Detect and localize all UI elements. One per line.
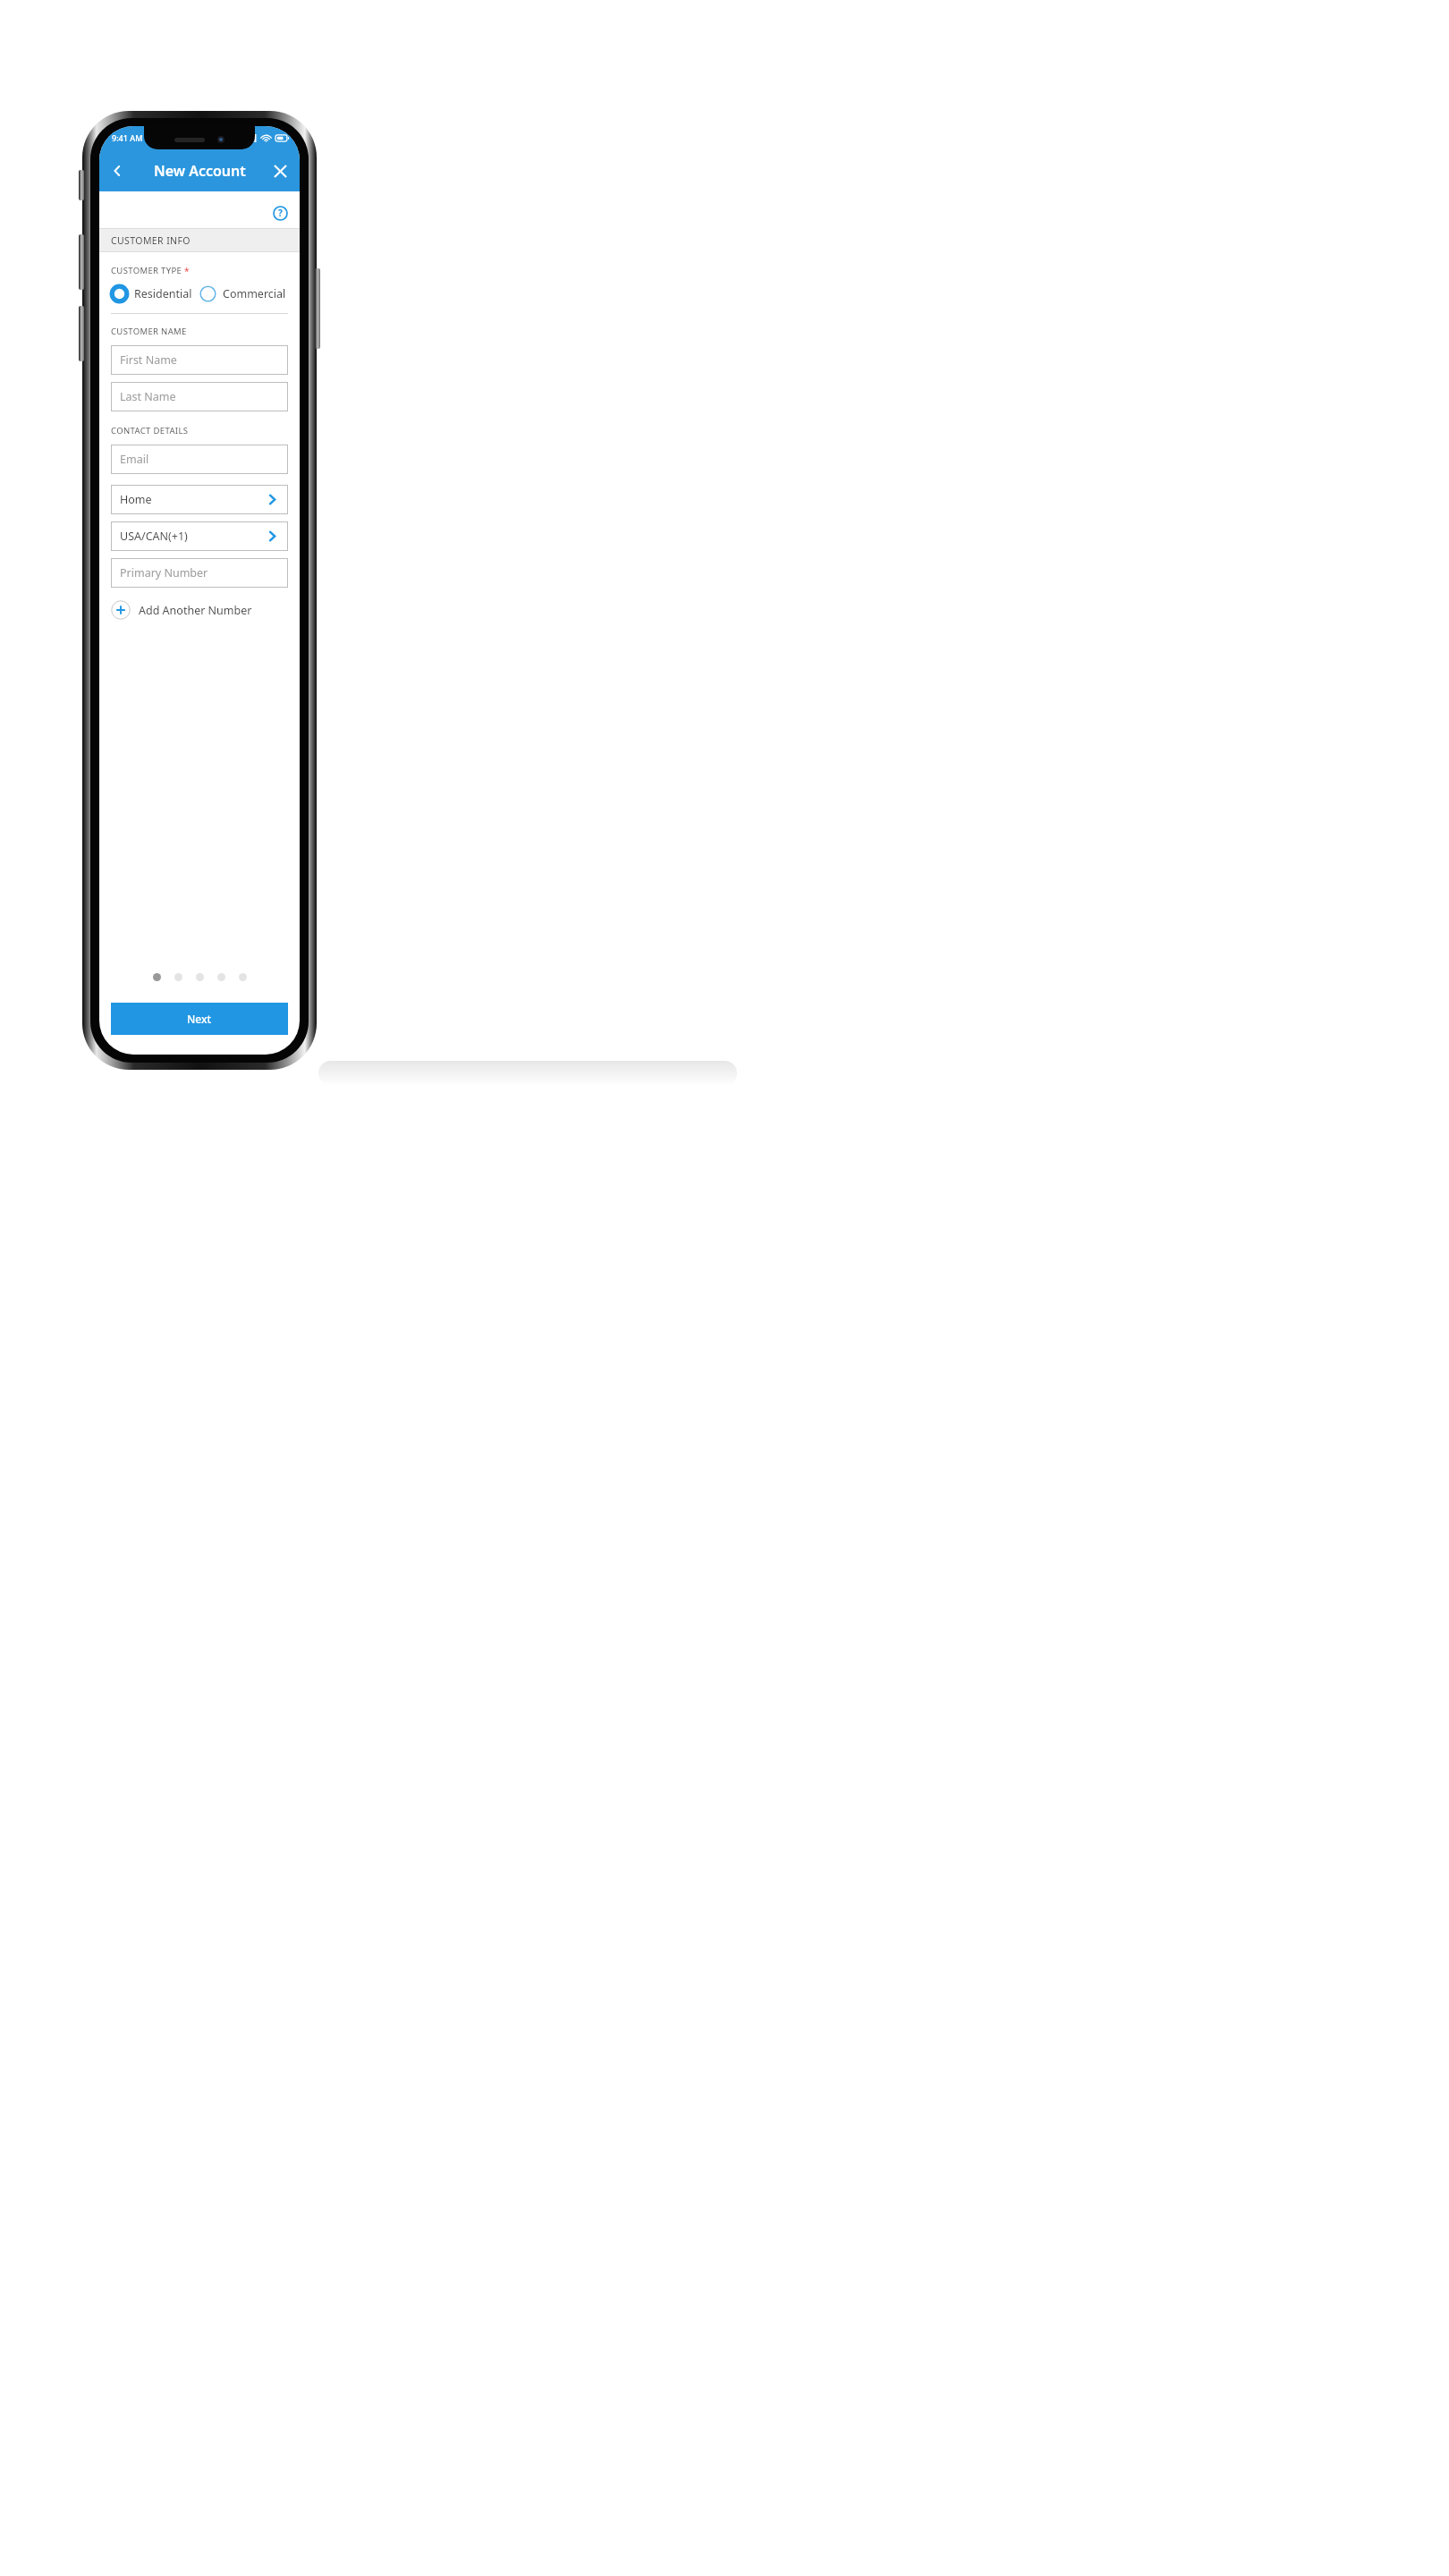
- staticText: Home: [120, 492, 152, 507]
- staticText: CUSTOMER NAME: [111, 326, 187, 337]
- staticText: ?: [278, 207, 283, 219]
- button[interactable]: USA/CAN(+1): [111, 521, 288, 551]
- staticText: USA/CAN(+1): [120, 529, 188, 544]
- button[interactable]: Residential: [111, 285, 199, 302]
- staticText: Primary Number: [120, 565, 208, 580]
- staticText: Add Another Number: [139, 603, 252, 618]
- staticText: Last Name: [120, 389, 176, 404]
- staticText: 9:41 AM: [112, 132, 143, 143]
- button[interactable]: Next: [111, 1003, 288, 1035]
- staticText: *: [184, 265, 190, 277]
- staticText: Email: [120, 452, 149, 467]
- button[interactable]: Help: [270, 203, 290, 223]
- button[interactable]: Last Name: [111, 382, 288, 411]
- staticText: Residential: [134, 286, 192, 301]
- staticText: New Account: [154, 161, 246, 181]
- button[interactable]: Close: [260, 151, 300, 191]
- button[interactable]: Back: [99, 153, 135, 189]
- button[interactable]: Email: [111, 445, 288, 474]
- button[interactable]: Commercial: [199, 285, 288, 302]
- staticText: Commercial: [223, 286, 286, 301]
- button[interactable]: Add Another Number: [111, 595, 288, 625]
- staticText: Next: [187, 1012, 212, 1026]
- button[interactable]: First Name: [111, 345, 288, 375]
- staticText: CUSTOMER TYPE: [111, 265, 182, 276]
- button[interactable]: Home: [111, 485, 288, 514]
- staticText: First Name: [120, 352, 177, 368]
- staticText: CUSTOMER INFO: [111, 234, 191, 247]
- staticText: CONTACT DETAILS: [111, 425, 189, 436]
- button[interactable]: Primary Number: [111, 558, 288, 588]
